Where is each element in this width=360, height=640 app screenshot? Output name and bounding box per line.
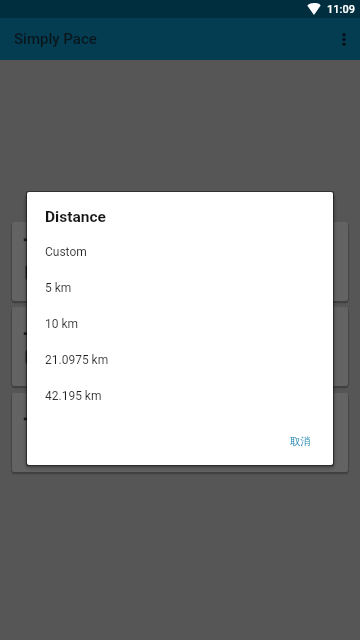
button[interactable]: Custom [27, 234, 333, 270]
staticText: 5 km [45, 281, 72, 295]
button[interactable]: 取消 [282, 426, 318, 456]
staticText: 42.195 km [45, 389, 102, 403]
button[interactable]: 10 km [27, 306, 333, 342]
button[interactable]: 42.195 km [27, 378, 333, 414]
staticText: Distance [45, 208, 106, 226]
button[interactable]: 21.0975 km [27, 342, 333, 378]
staticText: 取消 [290, 435, 311, 448]
button[interactable]: More options [327, 18, 360, 60]
staticText: Custom [45, 245, 87, 259]
staticText: 21.0975 km [45, 353, 109, 367]
button[interactable]: 5 km [27, 270, 333, 306]
staticText: 10 km [45, 317, 79, 331]
staticText: 11:09 [327, 3, 355, 16]
staticText: Simply Pace [14, 30, 97, 48]
